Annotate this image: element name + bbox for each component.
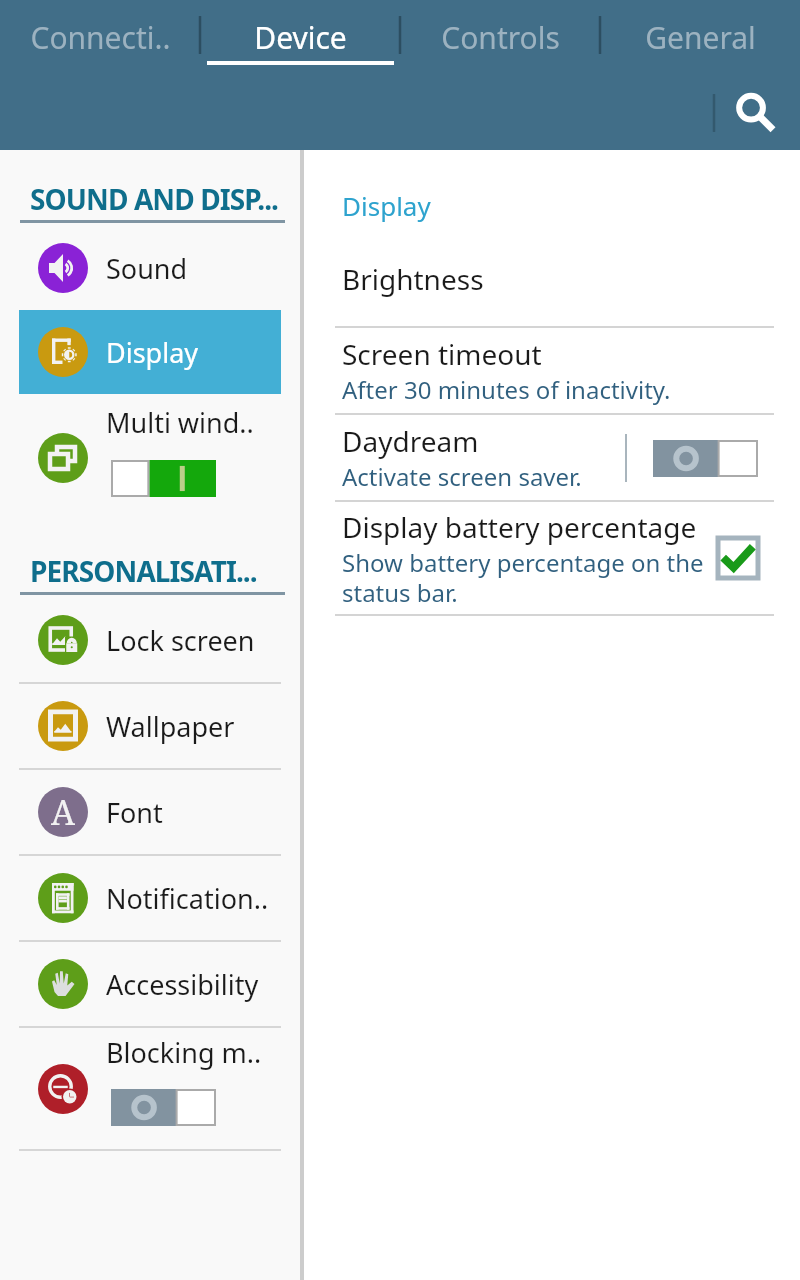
button[interactable]: Switch on <box>111 460 216 497</box>
staticText: Font <box>106 794 163 831</box>
button[interactable]: Switch off <box>111 1089 216 1126</box>
button[interactable]: Controls <box>400 0 600 76</box>
staticText: Wallpaper <box>106 708 235 745</box>
button[interactable]: Accessibility <box>19 942 281 1026</box>
button[interactable]: Multi wind.. <box>19 394 281 521</box>
button[interactable]: Display battery percentage checkbox <box>718 538 758 578</box>
staticText: Display <box>106 334 199 371</box>
staticText: General <box>645 17 756 58</box>
button[interactable]: Notification.. <box>19 856 281 940</box>
staticText: Accessibility <box>106 966 259 1003</box>
staticText: Daydream <box>342 422 479 460</box>
staticText: Display <box>342 188 431 223</box>
button[interactable]: Search <box>724 82 786 144</box>
staticText: Multi wind.. <box>106 404 254 441</box>
staticText: Controls <box>441 17 560 58</box>
button[interactable]: Switch off <box>653 440 758 477</box>
staticText: After 30 minutes of inactivity. <box>342 373 671 406</box>
staticText: Blocking m.. <box>106 1034 262 1071</box>
button[interactable]: Sound <box>19 226 281 310</box>
staticText: Notification.. <box>106 880 269 917</box>
staticText: Lock screen <box>106 622 255 659</box>
staticText: Activate screen saver. <box>342 460 582 493</box>
button[interactable]: Brightness <box>304 265 800 326</box>
button[interactable]: Screen timeout <box>304 328 800 413</box>
button[interactable]: Connecti.. <box>0 0 200 76</box>
button[interactable]: General <box>600 0 800 76</box>
staticText: Connecti.. <box>30 17 171 58</box>
button[interactable]: Daydream <box>304 415 800 500</box>
button[interactable]: Wallpaper <box>19 684 281 768</box>
button[interactable]: A <box>19 770 281 854</box>
staticText: Brightness <box>342 260 484 298</box>
staticText: Display battery percentage <box>342 508 697 546</box>
button[interactable]: Blocking m.. <box>19 1028 281 1149</box>
staticText: SOUND AND DISP... <box>30 180 279 218</box>
staticText: Device <box>254 17 347 58</box>
button[interactable]: Display <box>19 310 281 394</box>
staticText: PERSONALISATI... <box>30 552 257 590</box>
staticText: Sound <box>106 250 188 287</box>
button[interactable]: Lock screen <box>19 598 281 682</box>
staticText: A <box>51 789 75 835</box>
staticText: Show battery percentage on the status ba… <box>342 546 704 609</box>
staticText: Screen timeout <box>342 335 542 373</box>
button[interactable]: Display battery percentage <box>304 502 800 614</box>
button[interactable]: Device <box>200 0 400 76</box>
